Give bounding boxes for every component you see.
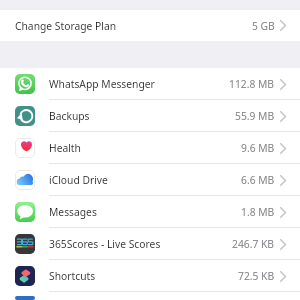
button[interactable]: Backups: [0, 100, 300, 132]
staticText: WhatsApp Messenger: [49, 77, 155, 91]
staticText: iCloud Drive: [49, 173, 108, 187]
button[interactable]: 365Scores - Live Scores: [0, 228, 300, 260]
staticText: Messages: [49, 205, 97, 219]
staticText: 1.8 MB: [241, 205, 275, 219]
staticText: 5 GB: [252, 19, 275, 33]
staticText: Health: [49, 141, 81, 155]
button[interactable]: Health: [0, 132, 300, 164]
button[interactable]: iCloud Drive: [0, 164, 300, 196]
staticText: Backups: [49, 109, 90, 123]
staticText: 246.7 KB: [232, 237, 275, 251]
staticText: 55.9 MB: [235, 109, 275, 123]
button[interactable]: Change Storage Plan: [0, 10, 300, 41]
button[interactable]: WhatsApp Messenger: [0, 68, 300, 100]
button[interactable]: Messages: [0, 196, 300, 228]
staticText: 112.8 MB: [229, 77, 275, 91]
button[interactable]: [0, 292, 300, 300]
staticText: Shortcuts: [49, 269, 96, 283]
staticText: 9.6 MB: [241, 141, 275, 155]
staticText: 365Scores - Live Scores: [49, 237, 161, 251]
staticText: Change Storage Plan: [15, 19, 117, 33]
staticText: 6.6 MB: [241, 173, 275, 187]
button[interactable]: Shortcuts: [0, 260, 300, 292]
staticText: 72.5 KB: [238, 269, 275, 283]
